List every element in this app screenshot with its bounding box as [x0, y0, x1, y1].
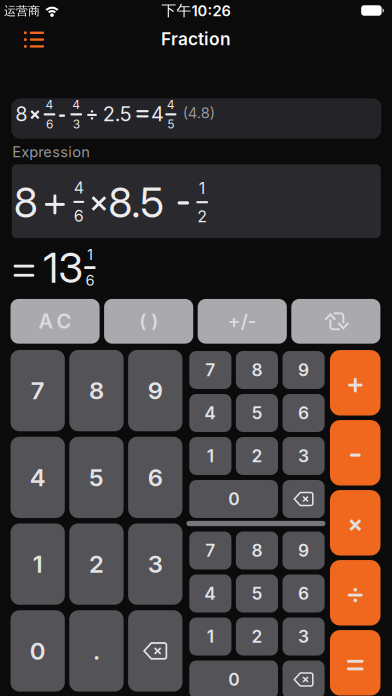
button[interactable]: 7 [189, 351, 231, 389]
staticText: 9 [148, 376, 163, 405]
staticText: 2 [89, 550, 104, 579]
staticText: 6 [298, 583, 309, 604]
staticText: Fraction [161, 28, 231, 49]
staticText: 下午10:26 [161, 1, 230, 20]
staticText: 4 [167, 97, 175, 112]
staticText: 4 [45, 97, 53, 112]
button[interactable]: 8 [236, 351, 278, 389]
staticText: 0 [30, 636, 46, 665]
staticText: 8 [15, 102, 27, 126]
staticText: 8 [89, 376, 104, 405]
staticText: 5 [251, 402, 262, 423]
button[interactable]: 4 [189, 394, 231, 432]
staticText: 3 [298, 626, 309, 647]
button[interactable]: 4 [189, 574, 231, 612]
staticText: 8 [251, 359, 262, 380]
staticText: . [93, 636, 100, 665]
staticText: 9 [298, 359, 309, 380]
staticText: 7 [205, 540, 215, 561]
staticText: 6 [74, 206, 84, 226]
staticText: ( ) [139, 310, 158, 333]
staticText: 1 [207, 445, 214, 466]
button[interactable]: A C [10, 299, 100, 344]
button[interactable] [330, 420, 380, 486]
button[interactable] [330, 560, 380, 625]
staticText: 7 [31, 376, 45, 405]
button[interactable]: 9 [282, 351, 325, 389]
button[interactable]: 6 [282, 574, 325, 612]
staticText: 1 [33, 550, 43, 579]
staticText: 2 [251, 445, 262, 466]
button[interactable] [330, 490, 380, 555]
button[interactable]: +/- [198, 299, 287, 344]
staticText: 8 [14, 177, 38, 227]
button[interactable]: 7 [189, 531, 231, 569]
button[interactable] [330, 630, 380, 695]
staticText: 2.5 [103, 102, 132, 126]
button[interactable]: . [69, 610, 124, 691]
staticText: 4 [72, 97, 80, 112]
button[interactable]: 3 [282, 437, 325, 475]
staticText: 13 [43, 243, 83, 293]
button[interactable]: 2 [236, 437, 278, 475]
button[interactable]: 8 [11, 98, 381, 139]
button[interactable]: 0 [10, 610, 65, 691]
button[interactable]: 0 [189, 660, 278, 696]
button[interactable]: 6 [128, 437, 182, 518]
button[interactable]: 5 [236, 394, 278, 432]
staticText: 1 [87, 246, 93, 264]
button[interactable]: ( ) [104, 299, 193, 344]
button[interactable]: 9 [128, 350, 182, 431]
staticText: Expression [12, 143, 90, 161]
staticText: 9 [298, 540, 309, 561]
button[interactable]: 1 [189, 617, 231, 655]
staticText: 0 [228, 488, 239, 509]
staticText: 8 [251, 540, 262, 561]
button[interactable]: 4 [10, 437, 65, 518]
staticText: 5 [251, 583, 262, 604]
staticText: 4 [74, 178, 84, 197]
staticText: 4 [204, 583, 216, 604]
button[interactable]: 2 [69, 523, 124, 605]
button[interactable] [291, 299, 380, 344]
button[interactable]: 8 [69, 350, 124, 431]
button[interactable] [128, 610, 182, 691]
staticText: 2 [251, 626, 262, 647]
staticText: 1 [207, 626, 214, 647]
button[interactable] [282, 480, 325, 518]
button[interactable]: 7 [10, 350, 65, 431]
staticText: 5 [167, 117, 174, 131]
staticText: 8.5 [108, 177, 164, 227]
staticText: 4 [30, 463, 46, 492]
staticText: 1 [199, 178, 206, 198]
staticText: 3 [73, 117, 80, 131]
button[interactable]: 8 [236, 531, 278, 569]
button[interactable]: 6 [282, 394, 325, 432]
staticText: 4 [151, 102, 164, 126]
staticText: A C [38, 309, 71, 333]
button[interactable]: 9 [282, 531, 325, 569]
staticText: (4.8) [183, 104, 215, 122]
button[interactable] [20, 29, 48, 51]
button[interactable]: 0 [189, 480, 278, 518]
button[interactable]: 1 [189, 437, 231, 475]
staticText: 6 [298, 402, 309, 423]
staticText: 0 [228, 669, 239, 690]
button[interactable]: 5 [236, 574, 278, 612]
button[interactable]: 1 [10, 523, 65, 605]
staticText: 5 [89, 463, 104, 492]
staticText: 运营商 [4, 3, 40, 18]
staticText: 7 [205, 359, 215, 380]
staticText: 6 [148, 463, 163, 492]
button[interactable]: 3 [282, 617, 325, 655]
staticText: 3 [298, 445, 309, 466]
button[interactable] [330, 350, 380, 416]
staticText: 3 [148, 550, 163, 579]
button[interactable]: 3 [128, 523, 182, 605]
button[interactable] [282, 660, 325, 696]
button[interactable]: 2 [236, 617, 278, 655]
staticText: 2 [197, 207, 207, 226]
staticText: +/- [228, 310, 257, 333]
staticText: 6 [46, 117, 53, 131]
button[interactable]: 5 [69, 437, 124, 518]
